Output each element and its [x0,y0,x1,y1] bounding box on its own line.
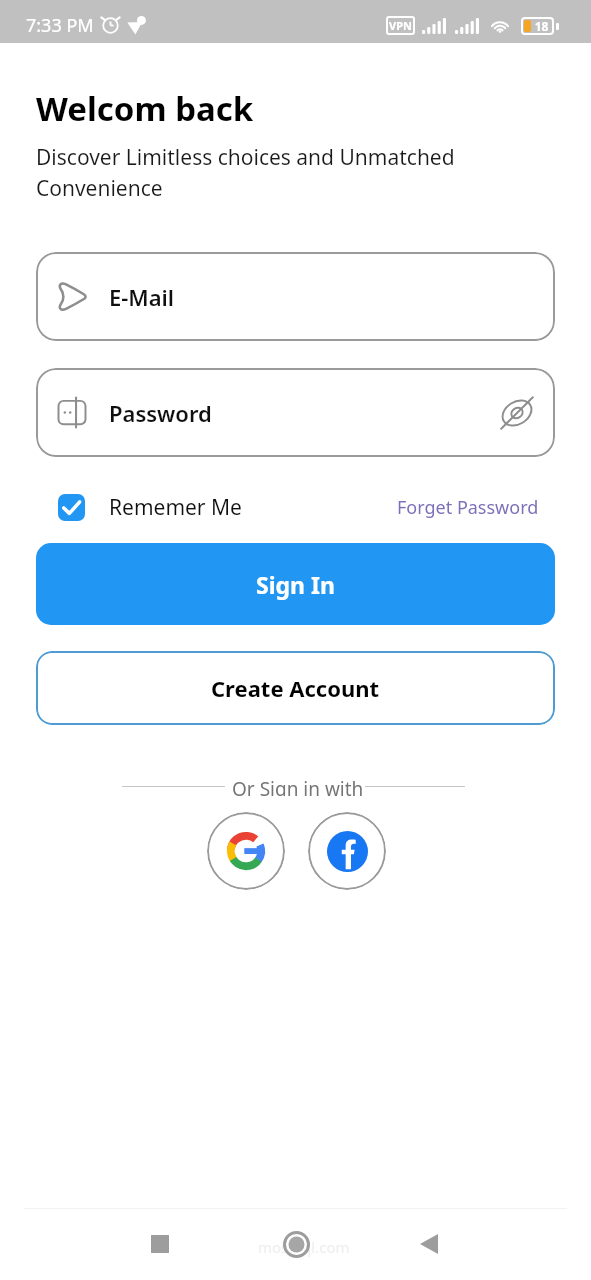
staticText: 18 [529,18,554,34]
button[interactable]: Sign in with Facebook [308,812,386,890]
button[interactable]: Recent apps [121,1208,199,1280]
button[interactable]: Password [36,368,555,457]
staticText: mostaql.com [258,1237,350,1257]
staticText: Or Sign in with [232,776,364,796]
button[interactable]: Rememer Me [58,493,242,522]
staticText: VPN [389,18,412,33]
staticText: Create Account [211,673,380,703]
staticText: 7:33 PM [26,13,94,38]
button[interactable]: Forget Password [397,495,539,520]
button[interactable]: E-Mail [36,252,555,341]
button[interactable]: Create Account [36,651,555,725]
staticText: Password [109,398,212,428]
staticText: E-Mail [109,282,175,312]
button[interactable]: Show password [500,396,534,430]
button[interactable]: Home [257,1208,335,1280]
staticText: Welcom back [36,86,254,131]
staticText: Rememer Me [109,493,242,522]
staticText: Sign In [256,569,335,600]
staticText: Discover Limitless choices and Unmatched… [36,143,536,202]
button[interactable]: Sign in with Google [207,812,285,890]
button[interactable]: Back [390,1208,468,1280]
staticText: Forget Password [397,495,539,520]
button[interactable]: Sign In [36,543,555,625]
